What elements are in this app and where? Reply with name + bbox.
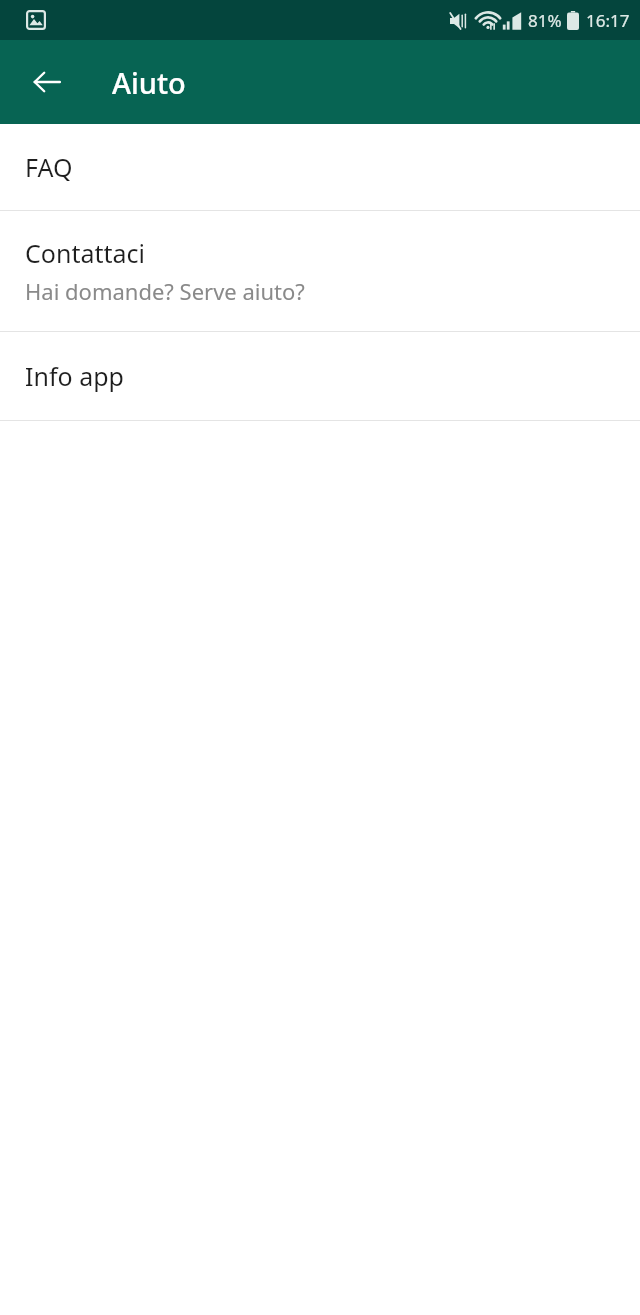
staticText: 81% — [528, 9, 562, 32]
staticText: Info app — [25, 359, 124, 393]
staticText: Contattaci — [25, 236, 145, 270]
staticText: Aiuto — [112, 63, 186, 102]
button[interactable]: Contattaci — [0, 211, 640, 331]
staticText: Hai domande? Serve aiuto? — [25, 276, 305, 306]
button[interactable]: Info app — [0, 332, 640, 420]
button[interactable]: Back — [19, 54, 75, 110]
staticText: 16:17 — [586, 9, 630, 32]
staticText: FAQ — [25, 150, 73, 184]
button[interactable]: FAQ — [0, 124, 640, 210]
